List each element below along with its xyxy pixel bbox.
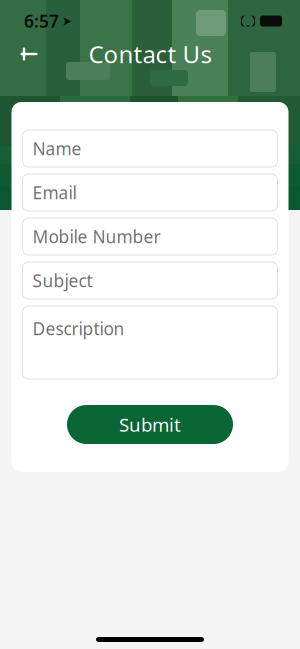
staticText: 6:57: [24, 9, 59, 32]
staticText: Email: [32, 181, 76, 204]
staticText: Subject: [32, 269, 92, 292]
staticText: Name: [32, 137, 81, 160]
staticText: Mobile Number: [32, 225, 160, 248]
button[interactable]: Back: [12, 37, 46, 71]
staticText: Contact Us: [88, 38, 211, 70]
staticText: Description: [32, 317, 124, 340]
staticText: Submit: [119, 412, 181, 437]
staticText: ➤: [62, 14, 72, 28]
button[interactable]: Submit: [67, 405, 233, 444]
